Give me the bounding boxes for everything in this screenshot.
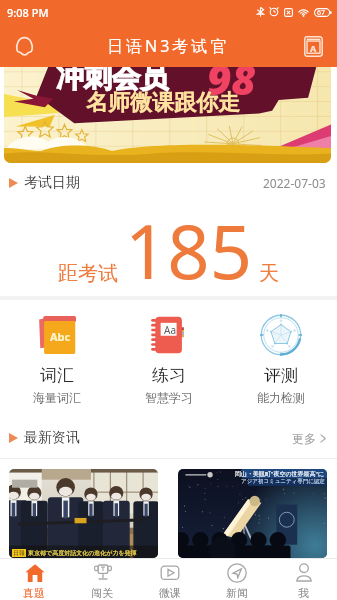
button[interactable]: 真题: [0, 559, 68, 600]
button[interactable]: 冲刺会员: [4, 67, 331, 163]
staticText: 智慧学习: [145, 390, 193, 405]
staticText: 考试日期: [24, 174, 80, 192]
staticText: 距考试: [58, 261, 118, 286]
staticText: 67: [317, 8, 326, 17]
staticText: 评测: [264, 365, 298, 386]
staticText: Abc: [50, 329, 71, 344]
staticText: 海量词汇: [33, 390, 81, 405]
staticText: 练习: [152, 365, 186, 386]
staticText: 185: [125, 200, 252, 293]
staticText: 真题: [23, 586, 45, 598]
staticText: アジア初コミュニティ専門に認定: [241, 478, 325, 485]
staticText: 日報: [13, 549, 25, 557]
staticText: Aa: [164, 323, 176, 337]
staticText: 词汇: [40, 365, 74, 386]
button[interactable]: News article 2: [178, 469, 327, 558]
staticText: 98: [207, 67, 256, 107]
staticText: 9:08 PM: [7, 5, 49, 20]
staticText: 天: [259, 261, 279, 286]
button[interactable]: 微课: [136, 559, 203, 600]
button[interactable]: Dictionary: [298, 31, 328, 61]
button[interactable]: 闯关: [68, 559, 136, 600]
button[interactable]: 更多: [292, 427, 326, 450]
staticText: 闯关: [91, 586, 113, 598]
staticText: 岡山・美観町"夜空の世界最高"に: [235, 470, 325, 478]
staticText: 新闻: [226, 586, 248, 598]
button[interactable]: 我: [270, 559, 337, 600]
staticText: 2022-07-03: [263, 175, 326, 191]
button[interactable]: 新闻: [203, 559, 270, 600]
button[interactable]: 评测: [225, 308, 337, 411]
staticText: A: [310, 42, 317, 54]
staticText: 名师微课跟你走: [86, 89, 240, 117]
staticText: 日语N3考试官: [107, 35, 230, 57]
staticText: 最新资讯: [24, 429, 80, 447]
button[interactable]: News article 1: [9, 469, 158, 558]
staticText: 冲刺会员: [56, 67, 168, 95]
staticText: 我: [298, 586, 309, 598]
button[interactable]: Aa: [113, 308, 225, 411]
button[interactable]: Abc: [0, 308, 113, 411]
staticText: 更多: [292, 431, 316, 446]
button[interactable]: Notifications: [9, 31, 39, 61]
staticText: 能力检测: [257, 390, 305, 405]
staticText: 東京都で高度対話文化の進化が力を発揮: [28, 549, 137, 557]
staticText: 微课: [159, 586, 181, 598]
